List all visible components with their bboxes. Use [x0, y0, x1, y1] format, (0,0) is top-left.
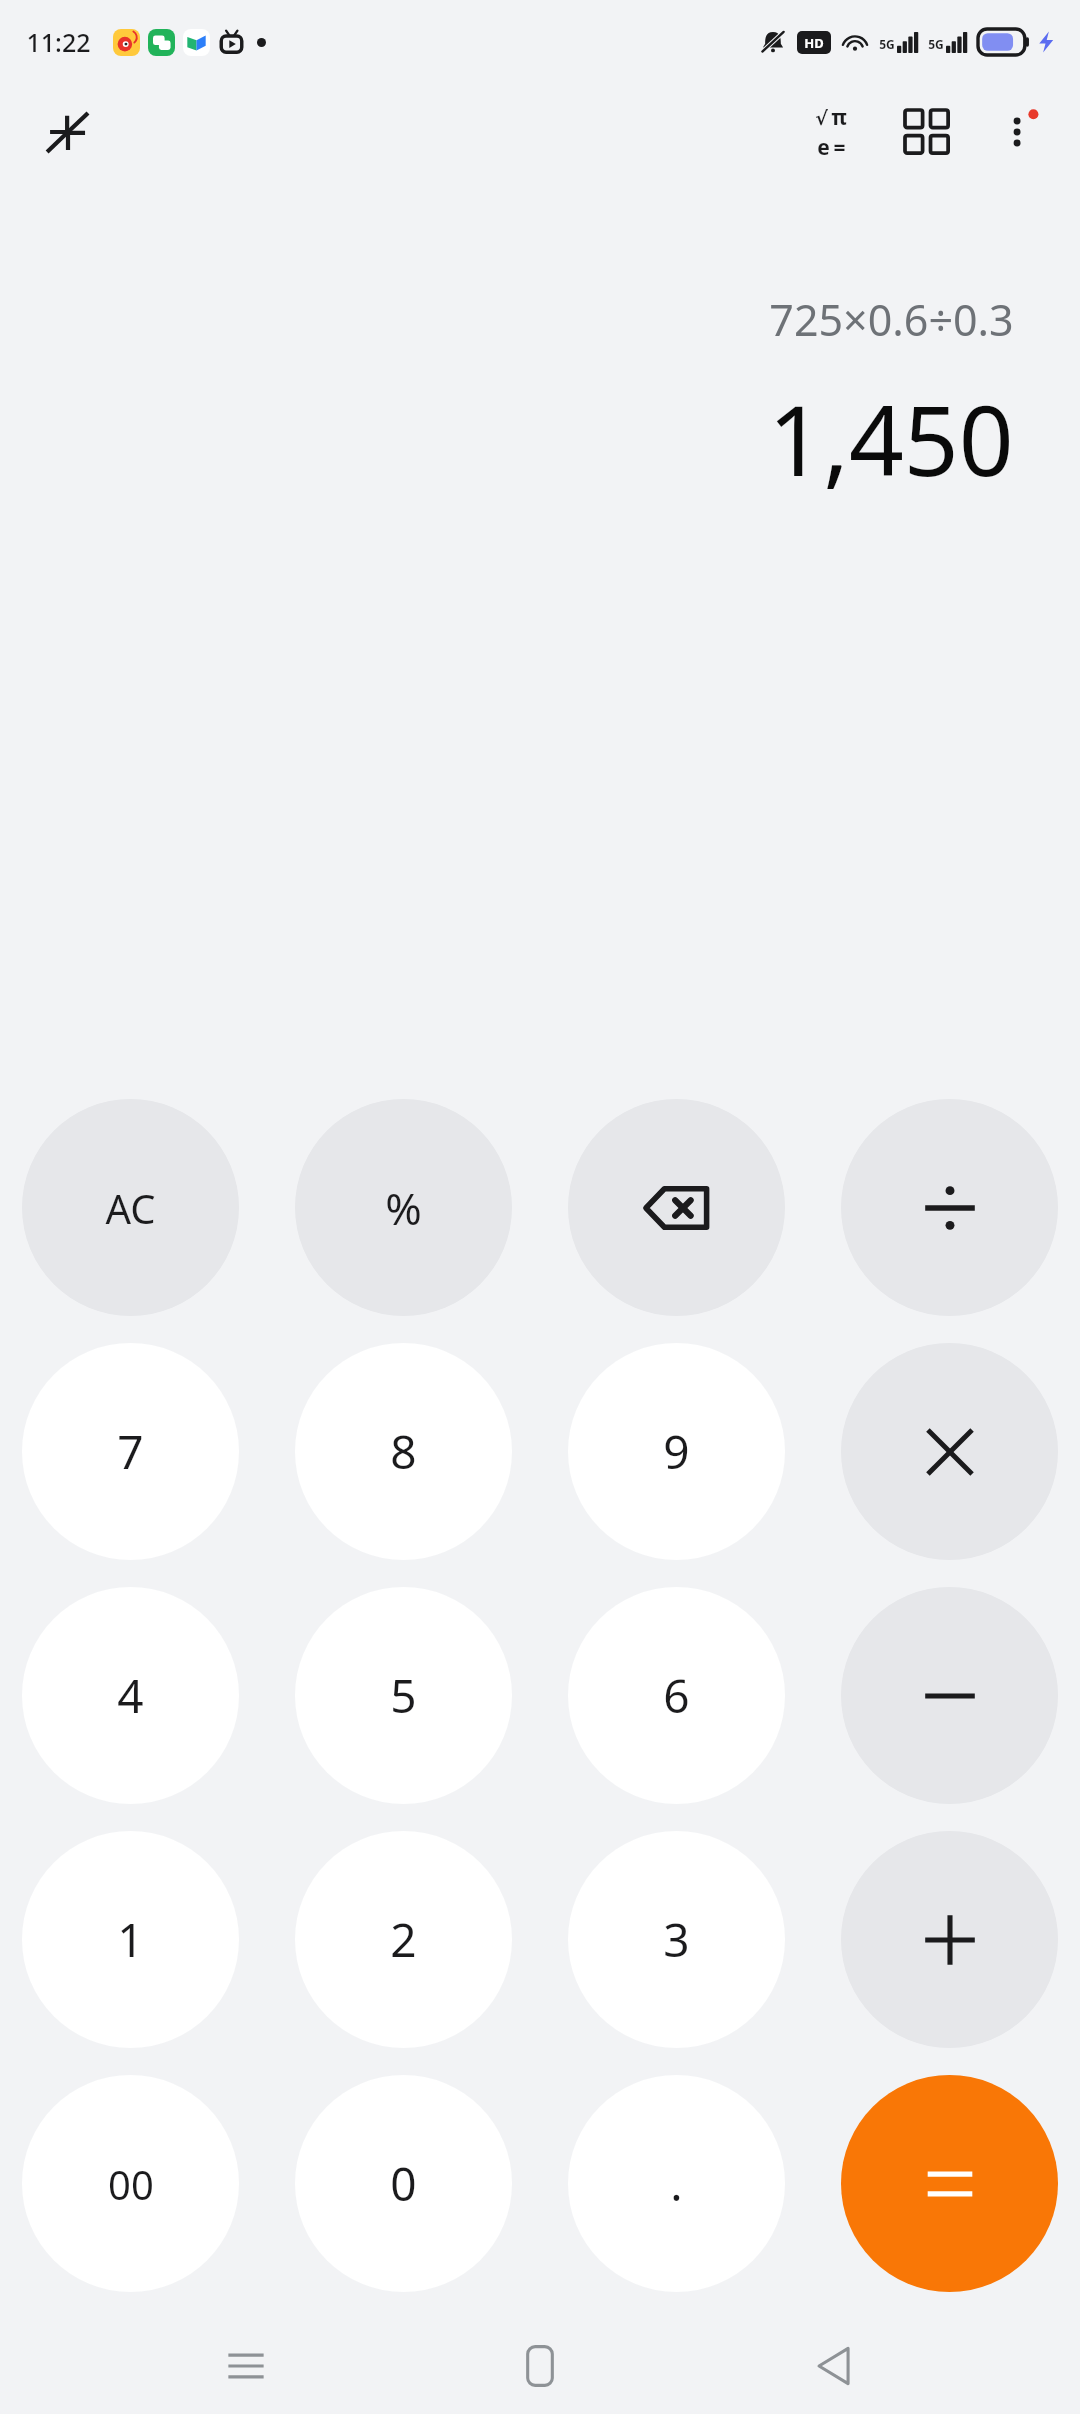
button[interactable]: 8 — [295, 1343, 512, 1560]
button[interactable]: 3 — [568, 1831, 785, 2048]
button[interactable]: . — [568, 2075, 785, 2292]
button[interactable]: 6 — [568, 1587, 785, 1804]
button[interactable]: 5 — [295, 1587, 512, 1804]
button[interactable]: 7 — [22, 1343, 239, 1560]
button[interactable]: 9 — [568, 1343, 785, 1560]
staticText: 5 — [390, 1664, 417, 1727]
staticText: 725×0.6÷0.3 — [769, 290, 1014, 349]
staticText: 11:22 — [26, 25, 91, 59]
staticText: √ — [815, 107, 828, 129]
button[interactable]: Scientific mode — [792, 93, 870, 171]
staticText: 8 — [390, 1420, 417, 1483]
button[interactable]: Divide — [841, 1099, 1058, 1316]
staticText: 5G — [879, 36, 895, 52]
staticText: = — [833, 133, 846, 162]
button[interactable]: Back — [786, 2318, 882, 2414]
button[interactable]: 4 — [22, 1587, 239, 1804]
staticText: 3 — [663, 1908, 690, 1971]
staticText: % — [385, 1178, 422, 1238]
button[interactable]: Unit converter — [888, 93, 966, 171]
button[interactable]: 00 — [22, 2075, 239, 2292]
button[interactable]: Subtract — [841, 1587, 1058, 1804]
staticText: 6 — [663, 1664, 690, 1727]
staticText: π — [831, 103, 847, 132]
button[interactable]: Add — [841, 1831, 1058, 2048]
staticText: 1 — [117, 1908, 144, 1971]
button[interactable]: Backspace — [568, 1099, 785, 1316]
button[interactable]: 2 — [295, 1831, 512, 2048]
staticText: 2 — [390, 1908, 417, 1971]
button[interactable]: Multiply — [841, 1343, 1058, 1560]
staticText: 1,450 — [768, 373, 1014, 504]
staticText: 5G — [928, 36, 944, 52]
button[interactable]: 1 — [22, 1831, 239, 2048]
button[interactable]: AC — [22, 1099, 239, 1316]
staticText: AC — [105, 1181, 156, 1235]
button[interactable]: Equals — [841, 2075, 1058, 2292]
staticText: 0 — [390, 2152, 417, 2215]
button[interactable]: More options — [980, 93, 1058, 171]
staticText: 00 — [108, 2157, 154, 2211]
button[interactable]: Home — [492, 2318, 588, 2414]
staticText: e — [817, 133, 830, 162]
staticText: 7 — [117, 1420, 144, 1483]
button[interactable]: Recents — [198, 2318, 294, 2414]
button[interactable]: Collapse — [36, 100, 100, 164]
button[interactable]: 0 — [295, 2075, 512, 2292]
staticText: . — [670, 2152, 683, 2215]
button[interactable]: % — [295, 1099, 512, 1316]
staticText: 4 — [117, 1664, 144, 1727]
staticText: HD — [804, 34, 824, 52]
staticText: 9 — [663, 1420, 690, 1483]
